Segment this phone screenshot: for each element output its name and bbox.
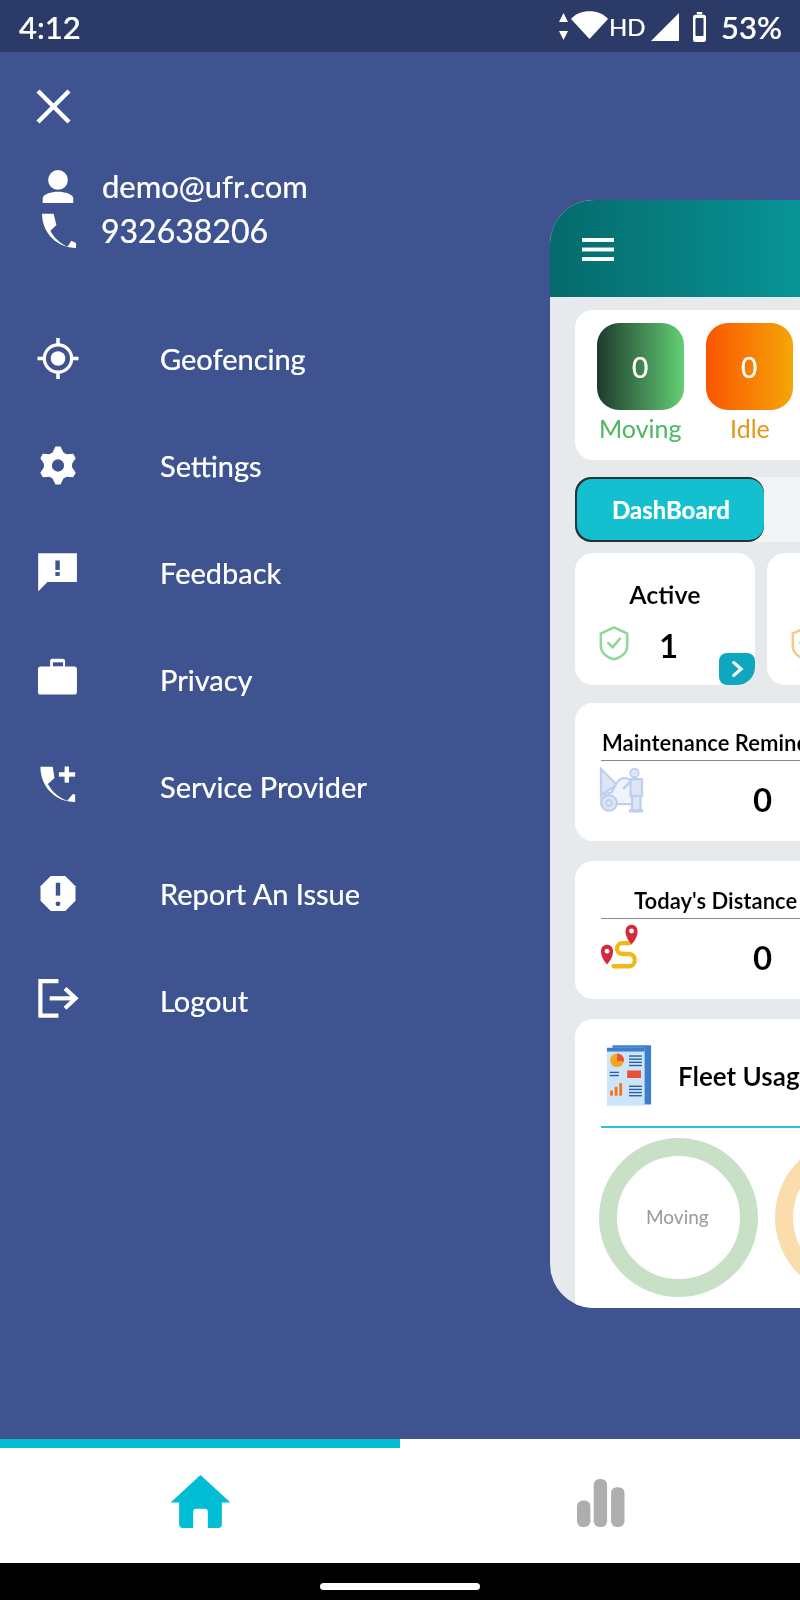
staticText: Moving <box>646 1205 709 1228</box>
button[interactable]: Logout <box>0 947 800 1054</box>
staticText: 0 <box>632 350 649 384</box>
staticText: HD <box>609 12 646 41</box>
staticText: Fleet Usage <box>678 1060 800 1091</box>
button[interactable]: Report An Issue <box>0 840 800 947</box>
staticText: 932638206 <box>101 211 269 249</box>
staticText: DashBoard <box>612 495 730 524</box>
staticText: 0 <box>741 350 758 384</box>
staticText: Settings <box>160 448 262 483</box>
button[interactable]: DashBoard <box>577 479 764 540</box>
staticText: Moving <box>599 413 682 443</box>
staticText: 0 <box>753 937 773 977</box>
button[interactable]: Home <box>0 1448 400 1563</box>
staticText: Feedback <box>160 555 282 590</box>
staticText: Idle <box>730 413 770 443</box>
staticText: Logout <box>160 983 249 1018</box>
staticText: Privacy <box>160 662 253 697</box>
staticText: demo@ufr.com <box>102 167 308 204</box>
staticText: Geofencing <box>160 341 306 376</box>
staticText: Active <box>575 579 755 609</box>
staticText: 53% <box>721 8 782 45</box>
button[interactable]: Close navigation drawer <box>28 81 78 131</box>
staticText: Maintenance Reminder <box>602 729 800 755</box>
button[interactable]: Service Provider <box>0 733 800 840</box>
button[interactable]: Open navigation menu <box>572 226 624 272</box>
button[interactable]: Feedback <box>0 519 800 626</box>
staticText: Report An Issue <box>160 876 361 911</box>
staticText: 0 <box>753 779 773 819</box>
staticText: 4:12 <box>19 8 81 45</box>
staticText: Today's Distance <box>634 887 798 913</box>
button[interactable]: View active vehicles <box>719 653 755 685</box>
staticText: 1 <box>659 625 679 665</box>
button[interactable]: Geofencing <box>0 305 800 412</box>
staticText: Service Provider <box>160 769 367 804</box>
button[interactable]: Privacy <box>0 626 800 733</box>
button[interactable]: Settings <box>0 412 800 519</box>
button[interactable]: Reports <box>400 1448 800 1563</box>
